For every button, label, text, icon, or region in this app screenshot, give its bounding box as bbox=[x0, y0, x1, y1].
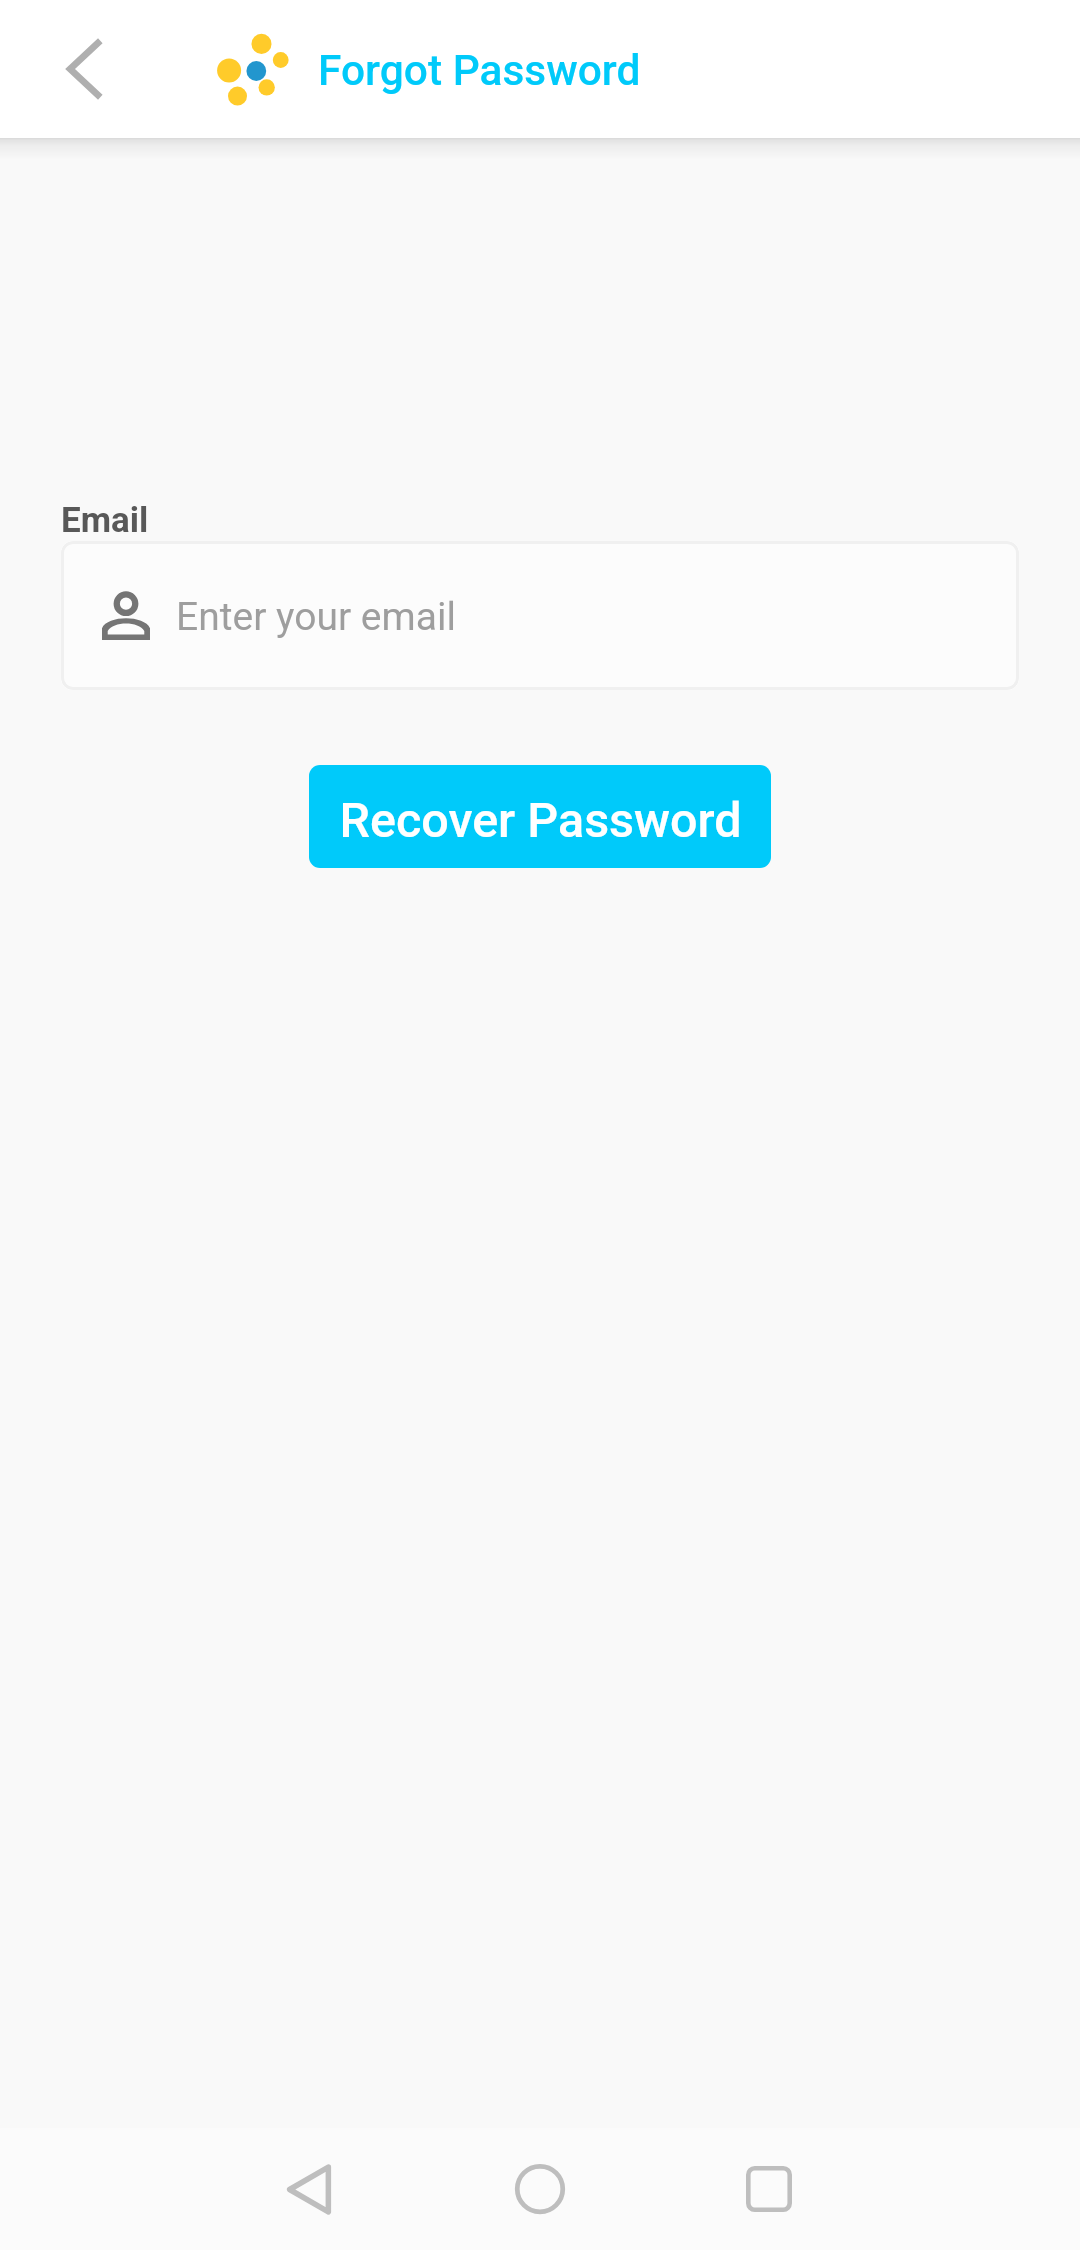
button[interactable]: Back bbox=[30, 14, 140, 124]
staticText: Email bbox=[61, 500, 149, 541]
staticText: Enter your email bbox=[176, 594, 456, 640]
staticText: Recover Password bbox=[339, 792, 742, 849]
button[interactable]: Recover Password bbox=[309, 765, 771, 868]
staticText: Forgot Password bbox=[318, 46, 641, 96]
button[interactable]: Back bbox=[254, 2134, 364, 2244]
button[interactable]: Enter your email bbox=[61, 541, 1019, 690]
button[interactable]: Recent apps bbox=[714, 2134, 824, 2244]
button[interactable]: Home bbox=[485, 2134, 595, 2244]
